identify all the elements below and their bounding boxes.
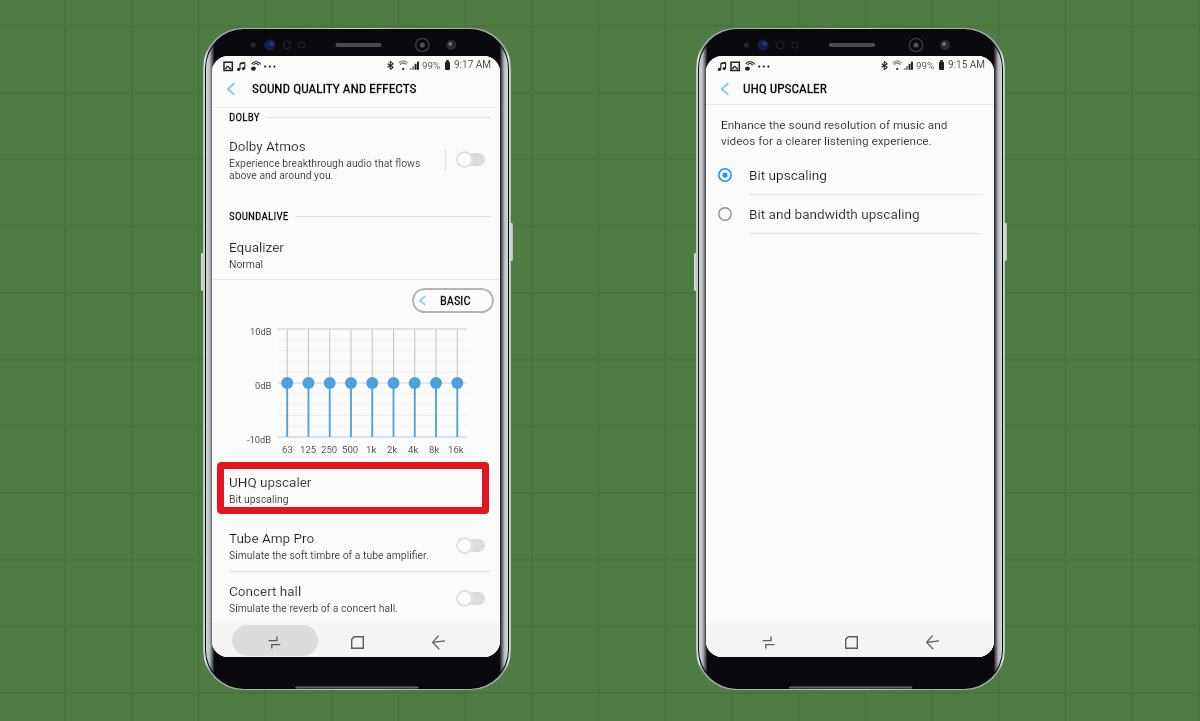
button[interactable]: Volume: [201, 253, 204, 291]
staticText: 63: [282, 444, 293, 455]
staticText: Enhance the sound resolution of music an…: [721, 118, 948, 148]
button[interactable]: Back: [716, 73, 734, 104]
button[interactable]: UHQ upscaler: [217, 462, 489, 514]
staticText: 0dB: [255, 380, 272, 391]
staticText: Concert hall: [229, 583, 302, 599]
staticText: UHQ upscaler: [229, 474, 312, 490]
staticText: 500: [342, 444, 359, 455]
staticText: Simulate the reverb of a concert hall.: [229, 602, 399, 614]
button[interactable]: Power: [1004, 223, 1007, 261]
button[interactable]: Recents: [261, 625, 288, 657]
button[interactable]: Back: [222, 73, 240, 104]
staticText: 99%: [916, 60, 935, 71]
button[interactable]: Power: [510, 223, 513, 261]
staticText: 125: [300, 444, 317, 455]
staticText: 2k: [387, 444, 398, 455]
button[interactable]: Recents: [755, 625, 782, 657]
staticText: Dolby Atmos: [229, 138, 306, 154]
staticText: SOUNDALIVE: [229, 210, 289, 223]
staticText: Tube Amp Pro: [229, 530, 315, 546]
button[interactable]: Home: [344, 625, 371, 657]
button[interactable]: Home: [838, 625, 865, 657]
staticText: Experience breakthrough audio that flows…: [229, 157, 421, 181]
staticText: 16k: [448, 444, 464, 455]
button[interactable]: Equalizer: [212, 237, 500, 276]
button[interactable]: [456, 590, 485, 607]
button[interactable]: Tube Amp Pro: [212, 528, 500, 565]
staticText: SOUND QUALITY AND EFFECTS: [252, 81, 417, 97]
staticText: 99%: [422, 60, 441, 71]
staticText: 9:15 AM: [948, 59, 986, 71]
staticText: 9:17 AM: [454, 59, 492, 71]
button[interactable]: Volume: [694, 253, 697, 291]
staticText: 8k: [429, 444, 440, 455]
button[interactable]: Bit upscaling: [706, 155, 994, 194]
button[interactable]: [456, 537, 485, 554]
staticText: 250: [321, 444, 338, 455]
staticText: DOLBY: [229, 111, 260, 124]
staticText: Bit and bandwidth upscaling: [749, 206, 920, 222]
staticText: -10dB: [247, 434, 272, 445]
button[interactable]: Concert hall: [212, 581, 500, 618]
button[interactable]: BASIC: [412, 288, 494, 313]
staticText: 10dB: [250, 326, 272, 337]
staticText: UHQ UPSCALER: [743, 81, 827, 97]
staticText: Equalizer: [229, 239, 284, 255]
staticText: Simulate the soft timbre of a tube ampli…: [229, 549, 429, 561]
staticText: BASIC: [440, 293, 471, 308]
button[interactable]: Back: [425, 625, 452, 657]
button[interactable]: Back: [919, 625, 946, 657]
staticText: Bit upscaling: [749, 167, 827, 183]
button[interactable]: Back: [212, 73, 500, 104]
staticText: Bit upscaling: [229, 493, 289, 505]
button[interactable]: Bit and bandwidth upscaling: [706, 194, 994, 233]
button[interactable]: [456, 151, 485, 168]
staticText: 4k: [408, 444, 419, 455]
staticText: Normal: [229, 258, 264, 270]
staticText: 1k: [366, 444, 377, 455]
button[interactable]: Back: [706, 73, 994, 104]
button[interactable]: Dolby Atmos: [212, 136, 500, 185]
